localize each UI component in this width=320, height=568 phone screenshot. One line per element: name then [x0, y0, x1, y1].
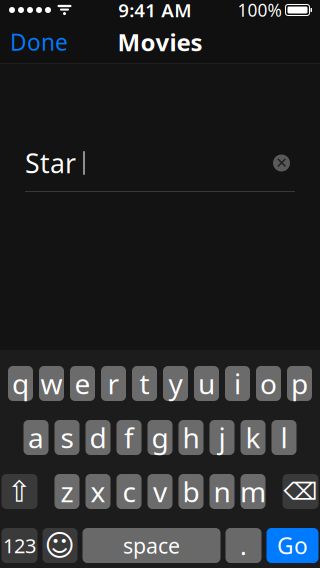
staticText: 9:41 AM	[118, 0, 191, 22]
staticText: 100%	[237, 0, 281, 21]
button[interactable]: q	[8, 366, 33, 401]
button[interactable]: r	[101, 366, 126, 401]
staticText: 123	[3, 532, 36, 559]
button[interactable]: b	[178, 474, 203, 509]
staticText: s	[60, 419, 73, 456]
button[interactable]: j	[209, 420, 234, 455]
button[interactable]: m	[240, 474, 265, 509]
staticText: n	[213, 473, 230, 510]
button[interactable]: e	[70, 366, 95, 401]
staticText: e	[74, 365, 90, 402]
staticText: ⇧	[7, 475, 32, 508]
button[interactable]: a	[23, 420, 48, 455]
button[interactable]: h	[178, 420, 203, 455]
button[interactable]: l	[271, 420, 296, 455]
staticText: Star	[25, 145, 76, 181]
staticText: ✕	[275, 155, 287, 171]
button[interactable]: p	[287, 366, 312, 401]
staticText: a	[28, 419, 44, 456]
staticText: o	[260, 365, 277, 402]
staticText: Movies	[117, 26, 202, 58]
staticText: q	[12, 365, 29, 402]
staticText: z	[60, 473, 73, 510]
button[interactable]: Delete	[282, 474, 318, 509]
staticText: t	[139, 365, 149, 402]
staticText: m	[240, 473, 266, 510]
staticText: Done	[10, 27, 68, 57]
staticText: j	[218, 419, 225, 456]
button[interactable]: .	[225, 528, 261, 563]
button[interactable]: c	[116, 474, 141, 509]
button[interactable]: o	[256, 366, 281, 401]
button[interactable]: n	[209, 474, 234, 509]
button[interactable]: y	[163, 366, 188, 401]
staticText: w	[40, 365, 62, 402]
staticText: .	[240, 529, 247, 562]
button[interactable]: g	[147, 420, 172, 455]
button[interactable]: k	[240, 420, 265, 455]
staticText: f	[124, 419, 134, 456]
button[interactable]: w	[39, 366, 64, 401]
staticText: space	[123, 531, 180, 560]
staticText: h	[182, 419, 199, 456]
button[interactable]: Emoji keyboard	[42, 528, 77, 563]
button[interactable]: Clear text	[268, 149, 295, 176]
staticText: v	[153, 473, 167, 510]
staticText: Go	[277, 530, 308, 560]
button[interactable]: f	[116, 420, 141, 455]
staticText: d	[89, 419, 106, 456]
button[interactable]: d	[85, 420, 110, 455]
button[interactable]: Shift	[1, 474, 37, 509]
button[interactable]: v	[147, 474, 172, 509]
staticText: l	[280, 419, 287, 456]
button[interactable]: x	[85, 474, 110, 509]
staticText: c	[122, 473, 135, 510]
staticText: k	[245, 419, 260, 456]
button[interactable]: s	[54, 420, 79, 455]
staticText: g	[151, 419, 168, 456]
staticText: u	[198, 365, 215, 402]
button[interactable]: u	[194, 366, 219, 401]
staticText: ⌫	[283, 478, 317, 505]
staticText: x	[90, 473, 105, 510]
staticText: r	[107, 365, 119, 402]
staticText: b	[182, 473, 199, 510]
button[interactable]: Go	[266, 528, 318, 563]
button[interactable]: t	[132, 366, 157, 401]
staticText: i	[234, 365, 241, 402]
button[interactable]: Done	[0, 18, 78, 66]
button[interactable]: space	[82, 528, 220, 563]
button[interactable]: z	[54, 474, 79, 509]
staticText: ☺	[44, 529, 75, 562]
button[interactable]: i	[225, 366, 250, 401]
button[interactable]: 123	[1, 528, 37, 563]
staticText: p	[291, 365, 308, 402]
staticText: y	[168, 365, 182, 402]
